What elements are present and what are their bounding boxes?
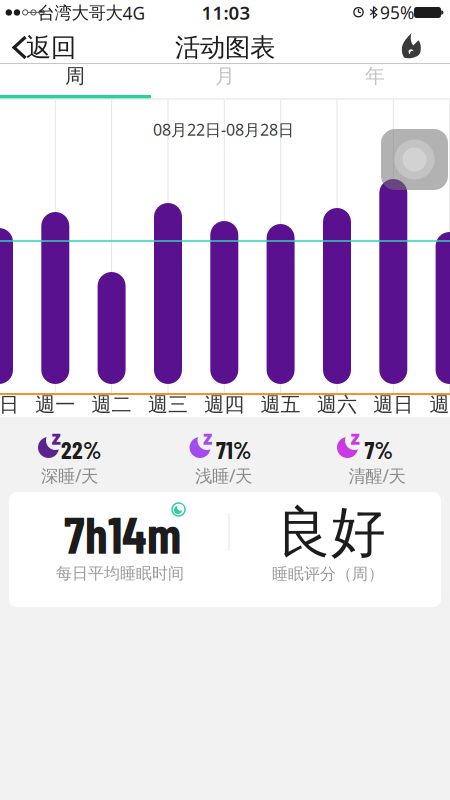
staticText: 週日 [0,392,19,417]
staticText: 年 [365,64,385,88]
staticText: 週日 [373,392,413,417]
staticText: 08月22日-08月28日 [153,119,294,140]
staticText: 良好 [276,499,386,566]
staticText: 週五 [261,392,301,417]
staticText: 11:03 [201,0,250,25]
staticText: 7h14m [64,503,181,564]
staticText: 週二 [92,392,132,417]
staticText: 22% [61,435,101,464]
staticText: 每日平均睡眠时间 [56,564,184,583]
staticText: z [51,425,60,450]
staticText: 週四 [204,392,244,417]
staticText: 活动图表 [175,32,275,63]
staticText: 週六 [317,392,357,417]
staticText: 周 [65,64,85,88]
staticText: 睡眠评分（周） [272,564,384,584]
staticText: 週一 [35,392,75,417]
staticText: 4G [122,1,145,24]
staticText: 7% [364,435,392,464]
staticText: 71% [216,435,251,464]
staticText: 深睡/天 [41,464,98,487]
staticText: 清醒/天 [348,464,405,487]
staticText: z [203,425,212,450]
staticText: 台湾大哥大 [37,2,122,24]
staticText: 月 [215,64,235,88]
staticText: 浅睡/天 [195,464,252,487]
staticText: 95% [380,1,414,24]
staticText: z [350,425,359,450]
staticText: 返回 [26,32,76,63]
staticText: 週三 [148,392,188,417]
staticText: 週一 [430,392,450,417]
